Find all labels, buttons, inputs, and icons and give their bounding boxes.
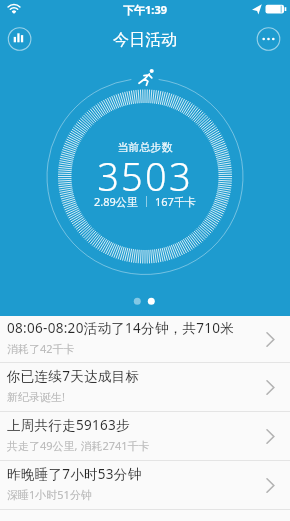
staticText: 2.89公里	[94, 194, 138, 209]
staticText: 下午1:39	[0, 2, 290, 17]
staticText: 08:06-08:20活动了14分钟，共710米	[7, 319, 235, 337]
staticText: 昨晚睡了7小时53分钟	[7, 465, 142, 483]
staticText: 167千卡	[155, 194, 196, 209]
button[interactable]: 上周共行走59163步	[0, 412, 290, 460]
staticText: 深睡1小时51分钟	[7, 487, 92, 502]
button[interactable]: 昨晚睡了7小时53分钟	[0, 461, 290, 509]
staticText: 你已连续7天达成目标	[7, 367, 140, 385]
staticText: 3503	[0, 150, 290, 202]
staticText: 上周共行走59163步	[7, 416, 130, 434]
staticText: 当前总步数	[0, 140, 290, 154]
button[interactable]: 08:06-08:20活动了14分钟，共710米	[0, 316, 290, 362]
button[interactable]	[8, 27, 32, 51]
staticText: 消耗了42千卡	[7, 341, 75, 356]
staticText: 共走了49公里, 消耗2741千卡	[7, 438, 150, 453]
button[interactable]: 你已连续7天达成目标	[0, 363, 290, 411]
staticText: 今日活动	[0, 30, 290, 50]
button[interactable]	[257, 27, 281, 51]
staticText: 新纪录诞生!	[7, 389, 65, 404]
